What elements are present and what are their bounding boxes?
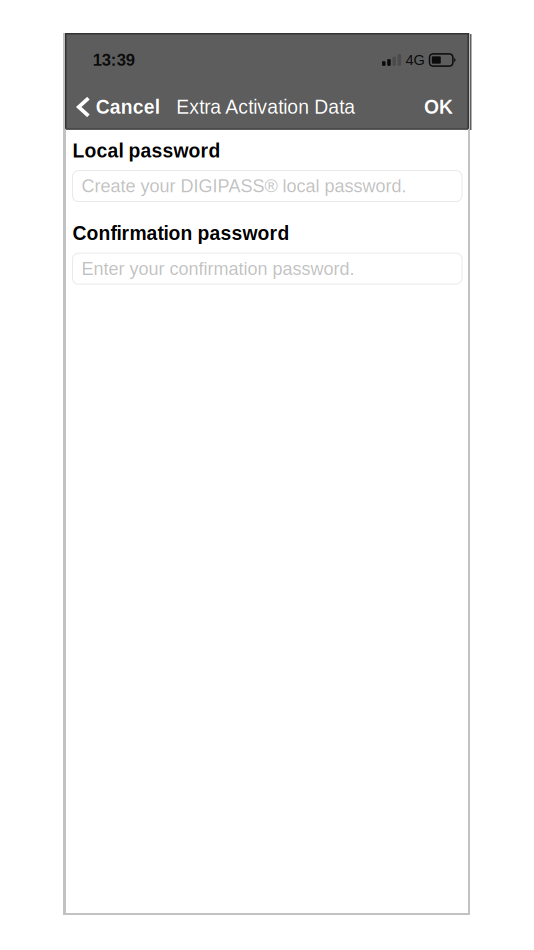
staticText: Create your DIGIPASS® local password. xyxy=(81,176,406,196)
staticText: Enter your confirmation password. xyxy=(81,259,354,279)
button[interactable]: Confirmation password xyxy=(72,253,462,284)
staticText: 13:39 xyxy=(93,51,135,69)
staticText: 4G xyxy=(405,52,424,68)
staticText: Extra Activation Data xyxy=(176,96,355,118)
button[interactable]: OK xyxy=(416,84,461,130)
staticText: Cancel xyxy=(96,96,160,118)
button[interactable]: Local password xyxy=(72,171,462,202)
staticText: Confirmation password xyxy=(72,223,289,244)
staticText: OK xyxy=(424,96,453,118)
staticText: Local password xyxy=(72,140,220,162)
button[interactable]: Cancel xyxy=(69,84,168,130)
